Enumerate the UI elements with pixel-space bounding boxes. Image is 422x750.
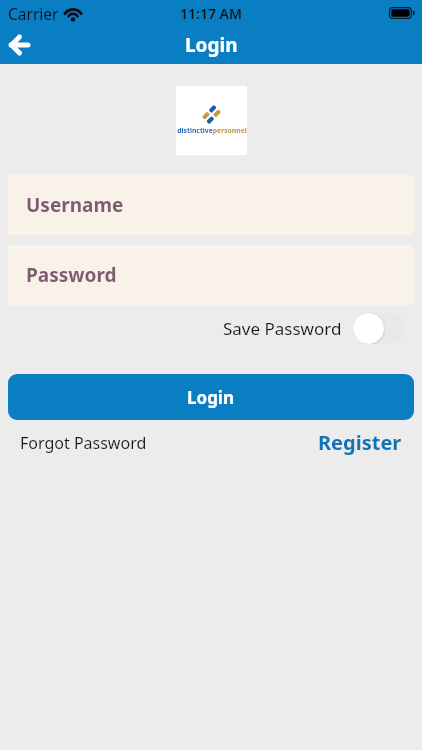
- button[interactable]: Login: [8, 374, 414, 420]
- staticText: Carrier: [8, 3, 59, 24]
- button[interactable]: Register: [318, 429, 402, 456]
- staticText: Password: [26, 262, 117, 288]
- button[interactable]: Password: [8, 245, 414, 305]
- button[interactable]: [353, 313, 405, 344]
- button[interactable]: Forgot Password: [20, 432, 147, 454]
- button[interactable]: [4, 30, 34, 60]
- staticText: distinctivepersonnel: [162, 126, 262, 135]
- button[interactable]: Username: [8, 175, 414, 235]
- staticText: Login: [185, 32, 238, 58]
- staticText: Login: [187, 386, 235, 409]
- staticText: Username: [26, 192, 124, 218]
- staticText: 11:17 AM: [180, 4, 242, 23]
- staticText: Save Password: [223, 317, 342, 340]
